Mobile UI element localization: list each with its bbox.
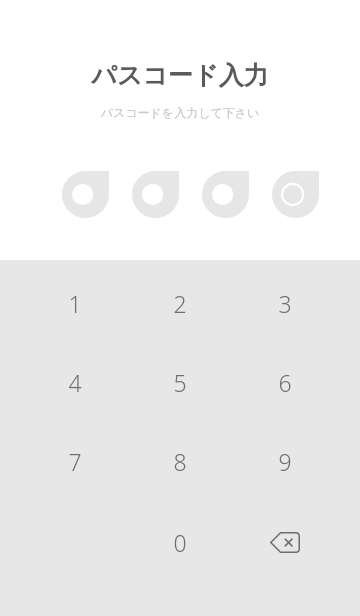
- staticText: 6: [278, 367, 292, 398]
- staticText: 2: [173, 288, 187, 319]
- button[interactable]: 7: [29, 426, 121, 496]
- staticText: 9: [278, 446, 292, 477]
- button[interactable]: 3: [239, 268, 331, 338]
- button[interactable]: 5: [134, 347, 226, 417]
- button[interactable]: 8: [134, 426, 226, 496]
- staticText: 8: [173, 446, 187, 477]
- button[interactable]: 9: [239, 426, 331, 496]
- staticText: 7: [68, 446, 82, 477]
- button[interactable]: 1: [29, 268, 121, 338]
- staticText: 5: [173, 367, 187, 398]
- button[interactable]: 4: [29, 347, 121, 417]
- staticText: 4: [68, 367, 82, 398]
- staticText: パスコード入力: [0, 60, 360, 91]
- button[interactable]: 2: [134, 268, 226, 338]
- staticText: パスコードを入力して下さい: [0, 105, 360, 120]
- staticText: 0: [173, 527, 187, 558]
- button[interactable]: 6: [239, 347, 331, 417]
- button[interactable]: 0: [134, 507, 226, 577]
- staticText: 1: [68, 288, 82, 319]
- staticText: 3: [278, 288, 292, 319]
- button[interactable]: Delete: [239, 507, 331, 577]
